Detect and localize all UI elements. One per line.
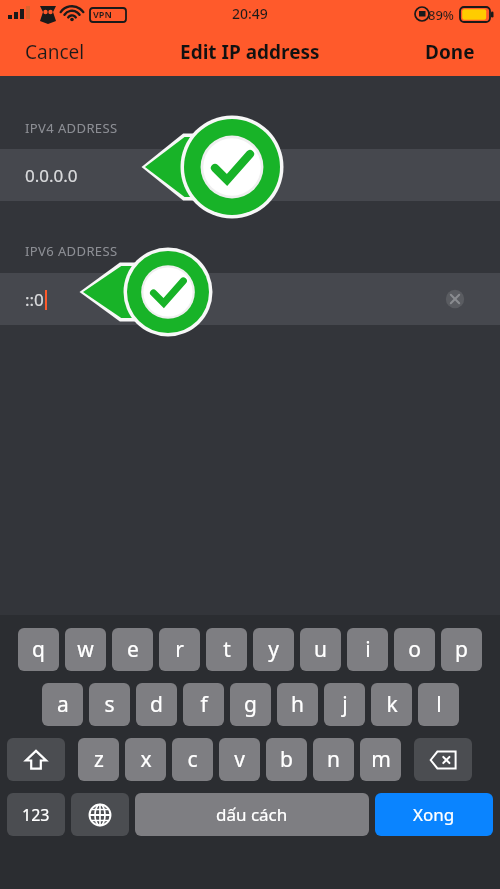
staticText: m <box>371 745 391 774</box>
button[interactable]: n <box>313 738 354 781</box>
staticText: Cancel <box>25 39 85 65</box>
staticText: 89% <box>428 6 454 24</box>
staticText: Edit IP address <box>180 39 320 65</box>
button[interactable]: m <box>360 738 401 781</box>
staticText: Xong <box>413 803 455 826</box>
button[interactable]: Shift <box>7 738 65 781</box>
button[interactable]: h <box>277 683 318 726</box>
button[interactable]: l <box>418 683 459 726</box>
button[interactable]: r <box>159 628 200 671</box>
staticText: h <box>291 690 304 719</box>
button[interactable]: i <box>347 628 388 671</box>
button[interactable]: j <box>324 683 365 726</box>
staticText: a <box>57 690 69 719</box>
button[interactable]: b <box>266 738 307 781</box>
button[interactable]: k <box>371 683 412 726</box>
button[interactable]: 123 <box>7 793 65 836</box>
staticText: o <box>408 635 421 664</box>
button[interactable]: x <box>125 738 166 781</box>
staticText: p <box>455 635 468 664</box>
button[interactable]: c <box>172 738 213 781</box>
button[interactable]: dấu cách <box>135 793 369 836</box>
staticText: Done <box>425 39 475 65</box>
staticText: n <box>327 745 340 774</box>
button[interactable]: Xong <box>375 793 493 836</box>
staticText: s <box>104 690 115 719</box>
button[interactable]: w <box>65 628 106 671</box>
button[interactable]: p <box>441 628 482 671</box>
staticText: d <box>150 690 163 719</box>
staticText: IPV6 ADDRESS <box>25 242 118 260</box>
staticText: ::0 <box>25 288 44 311</box>
button[interactable]: 0.0.0.0 <box>0 149 500 201</box>
button[interactable]: d <box>136 683 177 726</box>
staticText: c <box>187 745 198 774</box>
button[interactable]: Backspace <box>414 738 472 781</box>
staticText: k <box>386 690 398 719</box>
button[interactable]: s <box>89 683 130 726</box>
staticText: dấu cách <box>216 803 288 826</box>
staticText: x <box>140 745 152 774</box>
button[interactable]: u <box>300 628 341 671</box>
staticText: VPN <box>93 8 112 20</box>
staticText: f <box>200 690 208 719</box>
staticText: e <box>127 635 139 664</box>
staticText: l <box>436 690 442 719</box>
staticText: i <box>365 635 371 664</box>
button[interactable]: e <box>112 628 153 671</box>
staticText: g <box>244 690 257 719</box>
button[interactable]: q <box>18 628 59 671</box>
button[interactable]: Change keyboard <box>71 793 129 836</box>
staticText: r <box>175 635 184 664</box>
staticText: 20:49 <box>232 4 268 23</box>
button[interactable]: Done <box>400 28 500 76</box>
button[interactable]: Cancel <box>0 28 110 76</box>
staticText: b <box>280 745 293 774</box>
staticText: u <box>314 635 327 664</box>
staticText: 123 <box>22 804 50 826</box>
staticText: z <box>94 745 104 774</box>
staticText: t <box>223 635 231 664</box>
button[interactable]: f <box>183 683 224 726</box>
button[interactable]: z <box>78 738 119 781</box>
staticText: q <box>32 635 45 664</box>
button[interactable]: ::0 <box>0 273 500 325</box>
staticText: IPV4 ADDRESS <box>25 119 118 137</box>
button[interactable]: o <box>394 628 435 671</box>
staticText: y <box>268 635 279 664</box>
button[interactable]: a <box>42 683 83 726</box>
button[interactable]: y <box>253 628 294 671</box>
button[interactable]: v <box>219 738 260 781</box>
button[interactable]: g <box>230 683 271 726</box>
button[interactable]: Clear text <box>443 287 467 311</box>
staticText: j <box>342 690 348 719</box>
staticText: w <box>77 635 94 664</box>
button[interactable]: t <box>206 628 247 671</box>
staticText: 0.0.0.0 <box>25 164 78 187</box>
staticText: v <box>234 745 245 774</box>
